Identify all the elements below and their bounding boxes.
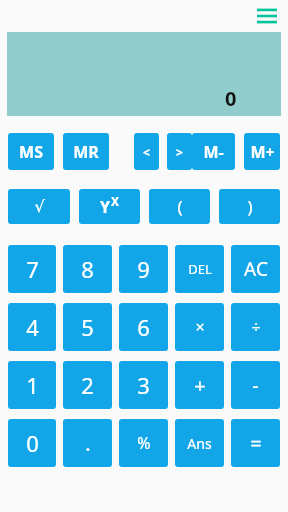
staticText: × <box>195 316 205 338</box>
staticText: 3 <box>137 370 150 400</box>
button[interactable]: MS <box>8 133 54 170</box>
button[interactable]: % <box>119 419 168 467</box>
button[interactable]: - <box>231 361 280 409</box>
button[interactable]: 8 <box>63 245 112 293</box>
button[interactable]: Ans <box>175 419 224 467</box>
staticText: 8 <box>81 254 94 284</box>
staticText: MS <box>19 141 43 163</box>
staticText: 0 <box>26 428 39 458</box>
staticText: < <box>143 144 150 160</box>
button[interactable]: ( <box>149 189 210 224</box>
staticText: > <box>176 144 183 160</box>
staticText: √ <box>34 197 45 216</box>
button[interactable]: AC <box>231 245 280 293</box>
button[interactable]: MR <box>63 133 109 170</box>
button[interactable]: 3 <box>119 361 168 409</box>
staticText: M- <box>203 141 224 163</box>
button[interactable]: 0 <box>8 419 56 467</box>
button[interactable]: 1 <box>8 361 56 409</box>
staticText: ) <box>247 195 253 218</box>
staticText: Y <box>100 196 111 218</box>
button[interactable]: < <box>134 133 159 170</box>
staticText: 4 <box>26 312 39 342</box>
button[interactable]: = <box>231 419 280 467</box>
button[interactable]: 7 <box>8 245 56 293</box>
button[interactable]: + <box>175 361 224 409</box>
staticText: - <box>252 372 259 399</box>
staticText: 9 <box>137 254 150 284</box>
staticText: % <box>137 432 151 454</box>
button[interactable]: Menu <box>254 3 280 29</box>
staticText: 6 <box>137 312 150 342</box>
staticText: 7 <box>26 254 39 284</box>
button[interactable]: × <box>175 303 224 351</box>
button[interactable]: M- <box>192 133 235 170</box>
button[interactable]: DEL <box>175 245 224 293</box>
staticText: 2 <box>81 370 94 400</box>
staticText: MR <box>73 141 99 163</box>
staticText: M+ <box>250 141 275 163</box>
button[interactable]: ) <box>219 189 280 224</box>
staticText: ÷ <box>251 316 261 338</box>
staticText: ( <box>177 195 183 218</box>
button[interactable]: 2 <box>63 361 112 409</box>
button[interactable]: 4 <box>8 303 56 351</box>
button[interactable]: ÷ <box>231 303 280 351</box>
button[interactable]: 9 <box>119 245 168 293</box>
staticText: = <box>250 430 262 457</box>
button[interactable]: . <box>63 419 112 467</box>
button[interactable]: 5 <box>63 303 112 351</box>
staticText: . <box>85 430 91 457</box>
staticText: 0 <box>225 85 237 112</box>
staticText: Ans <box>187 434 212 453</box>
staticText: 1 <box>26 370 39 400</box>
staticText: 5 <box>81 312 94 342</box>
staticText: X <box>111 193 120 209</box>
staticText: DEL <box>188 260 212 278</box>
button[interactable]: √ <box>8 189 70 224</box>
button[interactable]: 6 <box>119 303 168 351</box>
staticText: + <box>194 372 206 399</box>
button[interactable]: > <box>167 133 192 170</box>
button[interactable]: Y <box>79 189 140 224</box>
button[interactable]: M+ <box>244 133 280 170</box>
staticText: AC <box>244 256 268 282</box>
